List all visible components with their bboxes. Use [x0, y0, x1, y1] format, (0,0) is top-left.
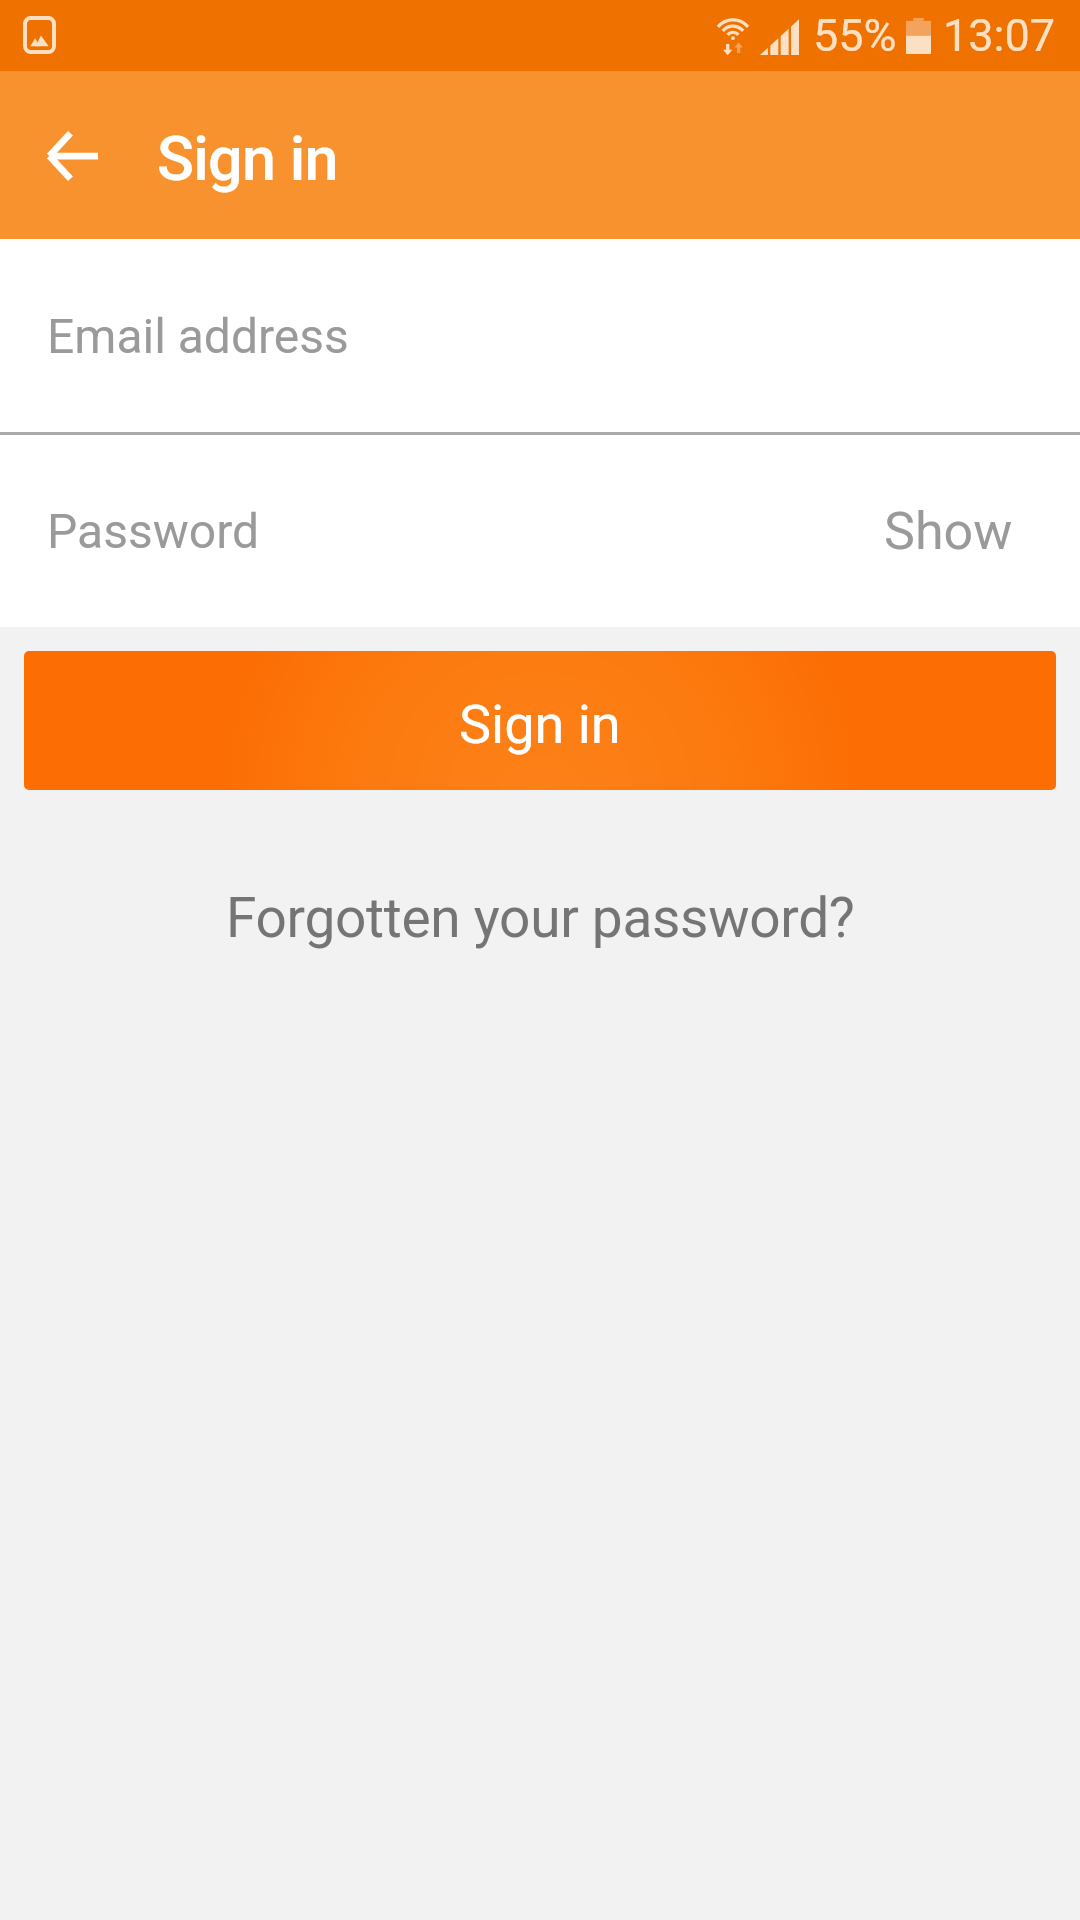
- staticText: Password: [47, 503, 260, 559]
- staticText: Sign in: [459, 693, 621, 756]
- button[interactable]: Password: [0, 435, 844, 627]
- button[interactable]: Show: [844, 435, 1080, 627]
- button[interactable]: Email address: [0, 239, 1080, 432]
- staticText: Forgotten your password?: [226, 886, 855, 950]
- staticText: Show: [884, 501, 1013, 562]
- button[interactable]: Forgotten your password?: [0, 854, 1080, 982]
- staticText: 13:07: [943, 9, 1056, 62]
- staticText: Sign in: [157, 123, 338, 194]
- other: Screenshot captured: [23, 16, 56, 54]
- button[interactable]: Back: [22, 105, 122, 205]
- button[interactable]: Sign in: [24, 651, 1056, 790]
- staticText: 55%: [813, 9, 897, 62]
- staticText: Email address: [47, 308, 349, 364]
